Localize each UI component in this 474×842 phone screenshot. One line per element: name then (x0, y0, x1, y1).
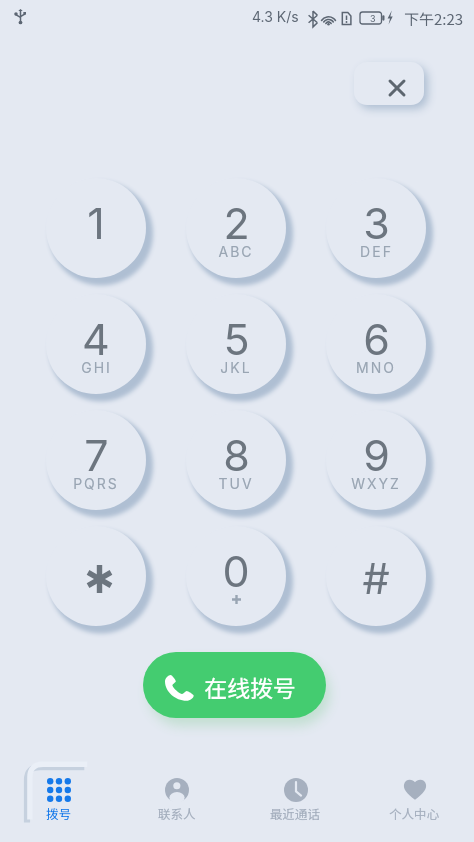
staticText: MNO (356, 359, 396, 376)
staticText: WXYZ (351, 475, 401, 492)
staticText: 4 (82, 313, 110, 365)
staticText: 1 (87, 197, 105, 249)
staticText: JKL (220, 359, 252, 376)
staticText: 2 (223, 197, 250, 249)
staticText: 个人中心 (389, 804, 440, 822)
staticText: ABC (218, 243, 254, 260)
staticText: 5 (223, 313, 250, 365)
button[interactable]: 最近通话 (236, 740, 355, 842)
button[interactable]: 2 (186, 178, 286, 278)
button[interactable]: 个人中心 (355, 740, 474, 842)
button[interactable]: 4 (46, 294, 146, 394)
button[interactable]: 3 (326, 178, 426, 278)
button[interactable]: 9 (326, 410, 426, 510)
button[interactable]: 6 (326, 294, 426, 394)
staticText: 下午2:23 (404, 8, 464, 30)
staticText: 联系人 (158, 804, 196, 822)
button[interactable]: Close (354, 62, 424, 105)
staticText: 6 (363, 313, 390, 365)
staticText: 4.3 K/s (252, 8, 299, 25)
button[interactable]: 5 (186, 294, 286, 394)
button[interactable]: 0 (186, 526, 286, 626)
staticText: 最近通话 (270, 804, 321, 822)
button[interactable]: # (326, 526, 426, 626)
button[interactable]: 联系人 (118, 740, 236, 842)
staticText: DEF (360, 243, 393, 260)
staticText: 7 (84, 429, 109, 481)
staticText: 3 (363, 197, 390, 249)
staticText: 9 (363, 429, 390, 481)
staticText: 3 (370, 13, 376, 24)
staticText: 0 (222, 545, 250, 597)
button[interactable]: 1 (46, 178, 146, 278)
button[interactable]: 7 (46, 410, 146, 510)
staticText: 在线拨号 (204, 670, 296, 703)
staticText: TUV (218, 475, 254, 492)
staticText: 拨号 (46, 804, 72, 822)
staticText: GHI (81, 359, 112, 376)
staticText: 8 (223, 429, 250, 481)
button[interactable] (46, 526, 146, 626)
staticText: PQRS (73, 475, 119, 492)
button[interactable]: 8 (186, 410, 286, 510)
button[interactable]: 在线拨号 (143, 652, 326, 718)
staticText: # (362, 552, 390, 604)
button[interactable]: 拨号 (0, 740, 118, 842)
